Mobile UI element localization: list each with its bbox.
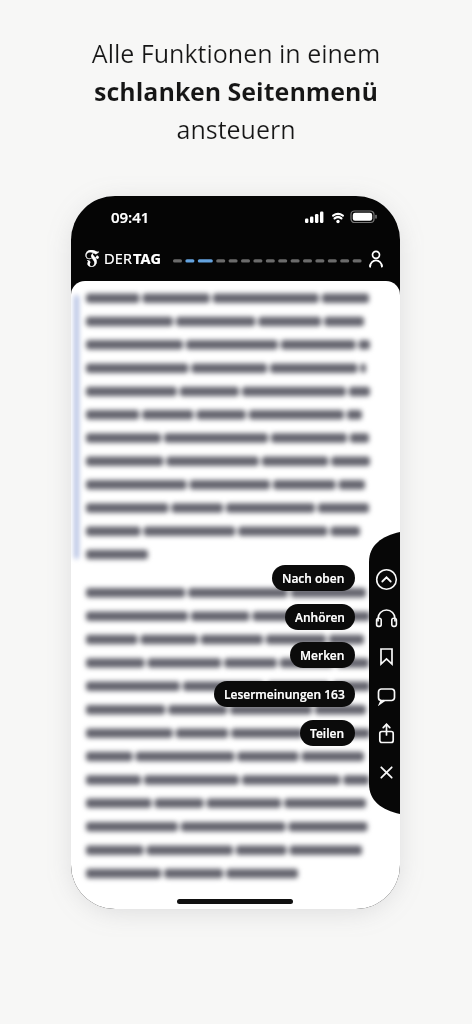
staticText: TAG (133, 249, 162, 269)
staticText: F (85, 249, 100, 269)
button[interactable]: Merken (290, 642, 355, 668)
staticText: Nach oben (282, 570, 345, 586)
staticText: DER (104, 249, 133, 269)
staticText: Anhören (295, 609, 345, 625)
button[interactable]: Nach oben (272, 565, 355, 591)
button[interactable]: Anhören (285, 604, 355, 630)
button[interactable] (371, 603, 400, 634)
button[interactable] (365, 248, 387, 270)
staticText: 09:41 (111, 207, 150, 227)
button[interactable]: Teilen (300, 720, 355, 746)
button[interactable] (371, 680, 400, 711)
button[interactable]: Lesermeinungen 163 (214, 681, 355, 707)
staticText: Teilen (310, 725, 345, 741)
staticText: ansteuern (0, 112, 472, 146)
button[interactable] (371, 564, 400, 595)
staticText: Merken (300, 647, 345, 663)
button[interactable] (371, 641, 400, 672)
staticText: schlanken Seitenmenü (0, 74, 472, 108)
button[interactable] (371, 757, 400, 788)
staticText: Alle Funktionen in einem (0, 36, 472, 70)
staticText: Lesermeinungen 163 (224, 686, 345, 702)
button[interactable] (371, 719, 400, 750)
